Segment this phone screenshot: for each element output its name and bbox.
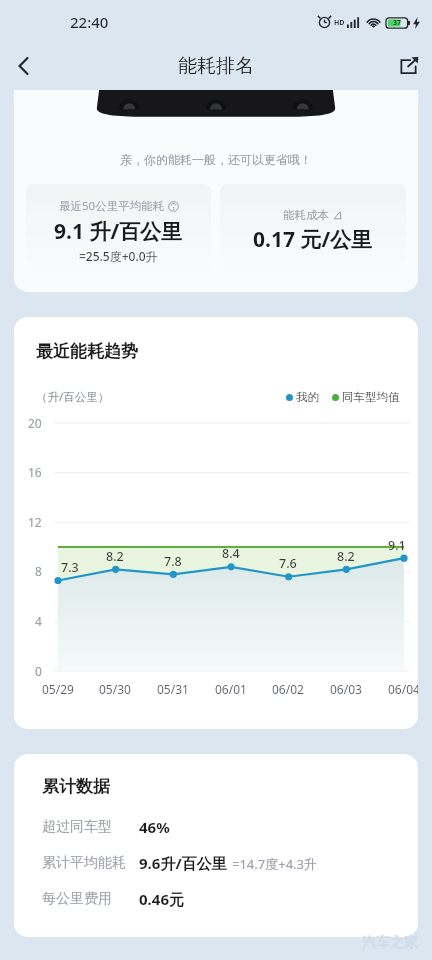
staticText: 汽车之家 <box>362 934 418 952</box>
staticText: 20 <box>28 415 42 431</box>
staticText: 8 <box>35 563 42 579</box>
staticText: 亲，你的能耗一般，还可以更省哦！ <box>120 152 312 167</box>
staticText: 能耗排名 <box>178 54 254 78</box>
staticText: 同车型均值 <box>342 390 400 404</box>
staticText: 46% <box>139 817 170 837</box>
staticText: 0.17 元/公里 <box>253 225 373 254</box>
staticText: 最近50公里平均能耗 <box>59 198 165 214</box>
button[interactable]: Share <box>384 44 432 88</box>
staticText: 37 <box>393 18 402 28</box>
staticText: 累计数据 <box>42 776 110 797</box>
staticText: 7.6 <box>279 555 297 572</box>
staticText: 06/03 <box>330 681 362 697</box>
staticText: 8.2 <box>337 548 355 565</box>
staticText: 7.8 <box>164 553 182 570</box>
staticText: 8.2 <box>106 548 124 565</box>
staticText: 9.1 升/百公里 <box>54 217 183 246</box>
staticText: 9.6升/百公里 <box>139 853 227 873</box>
staticText: 16 <box>28 464 42 480</box>
staticText: 8.4 <box>222 545 240 562</box>
staticText: 06/01 <box>215 681 247 697</box>
staticText: 最近能耗趋势 <box>36 341 138 362</box>
staticText: 05/29 <box>42 681 74 697</box>
staticText: 4 <box>35 613 42 629</box>
staticText: 0.46元 <box>139 889 184 909</box>
staticText: 超过同车型 <box>42 818 112 836</box>
staticText: （升/百公里） <box>36 389 110 405</box>
staticText: 7.3 <box>61 559 79 576</box>
button[interactable]: 能耗成本 <box>220 184 406 278</box>
staticText: 12 <box>28 514 42 530</box>
staticText: =14.7度+4.3升 <box>232 855 318 873</box>
staticText: HD <box>334 18 345 28</box>
staticText: 22:40 <box>70 12 109 32</box>
staticText: =25.5度+0.0升 <box>79 248 158 264</box>
staticText: 每公里费用 <box>42 890 112 908</box>
staticText: 05/30 <box>99 681 131 697</box>
staticText: 06/04 <box>388 681 418 697</box>
staticText: 0 <box>35 663 42 679</box>
staticText: 05/31 <box>157 681 189 697</box>
staticText: 我的 <box>296 390 319 404</box>
staticText: 9.1 <box>388 537 406 554</box>
staticText: 累计平均能耗 <box>42 854 126 872</box>
staticText: 能耗成本 <box>283 208 329 222</box>
button[interactable]: 最近50公里平均能耗 <box>26 184 211 278</box>
staticText: 06/02 <box>272 681 304 697</box>
button[interactable]: Back <box>0 44 48 88</box>
